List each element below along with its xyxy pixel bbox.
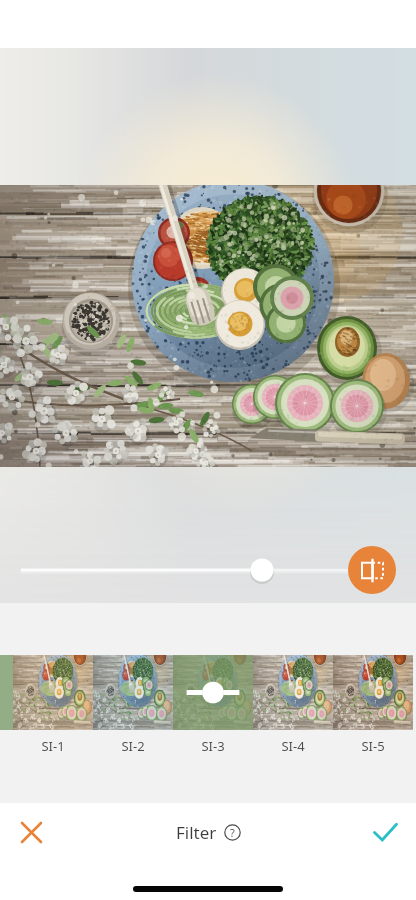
button[interactable] <box>253 655 333 730</box>
button[interactable]: Apply <box>354 804 416 860</box>
staticText: SI-2 <box>121 737 145 755</box>
button[interactable] <box>93 655 173 730</box>
staticText: SI-4 <box>281 737 305 755</box>
staticText: SI-3 <box>201 737 225 755</box>
staticText: Filter <box>176 821 217 844</box>
button[interactable]: SI-4 <box>253 737 333 755</box>
button[interactable] <box>173 655 253 730</box>
staticText: SI-1 <box>41 737 65 755</box>
button[interactable]: SI-1 <box>13 737 93 755</box>
button[interactable]: Filter <box>62 804 354 860</box>
button[interactable]: SI-2 <box>93 737 173 755</box>
button[interactable]: SI-3 <box>173 737 253 755</box>
button[interactable]: Cancel <box>0 804 62 860</box>
staticText: SI-5 <box>361 737 385 755</box>
button[interactable] <box>13 655 93 730</box>
button[interactable]: SI-5 <box>333 737 413 755</box>
button[interactable] <box>333 655 413 730</box>
staticText: ? <box>230 825 235 840</box>
button[interactable]: Compare with original <box>348 546 396 594</box>
